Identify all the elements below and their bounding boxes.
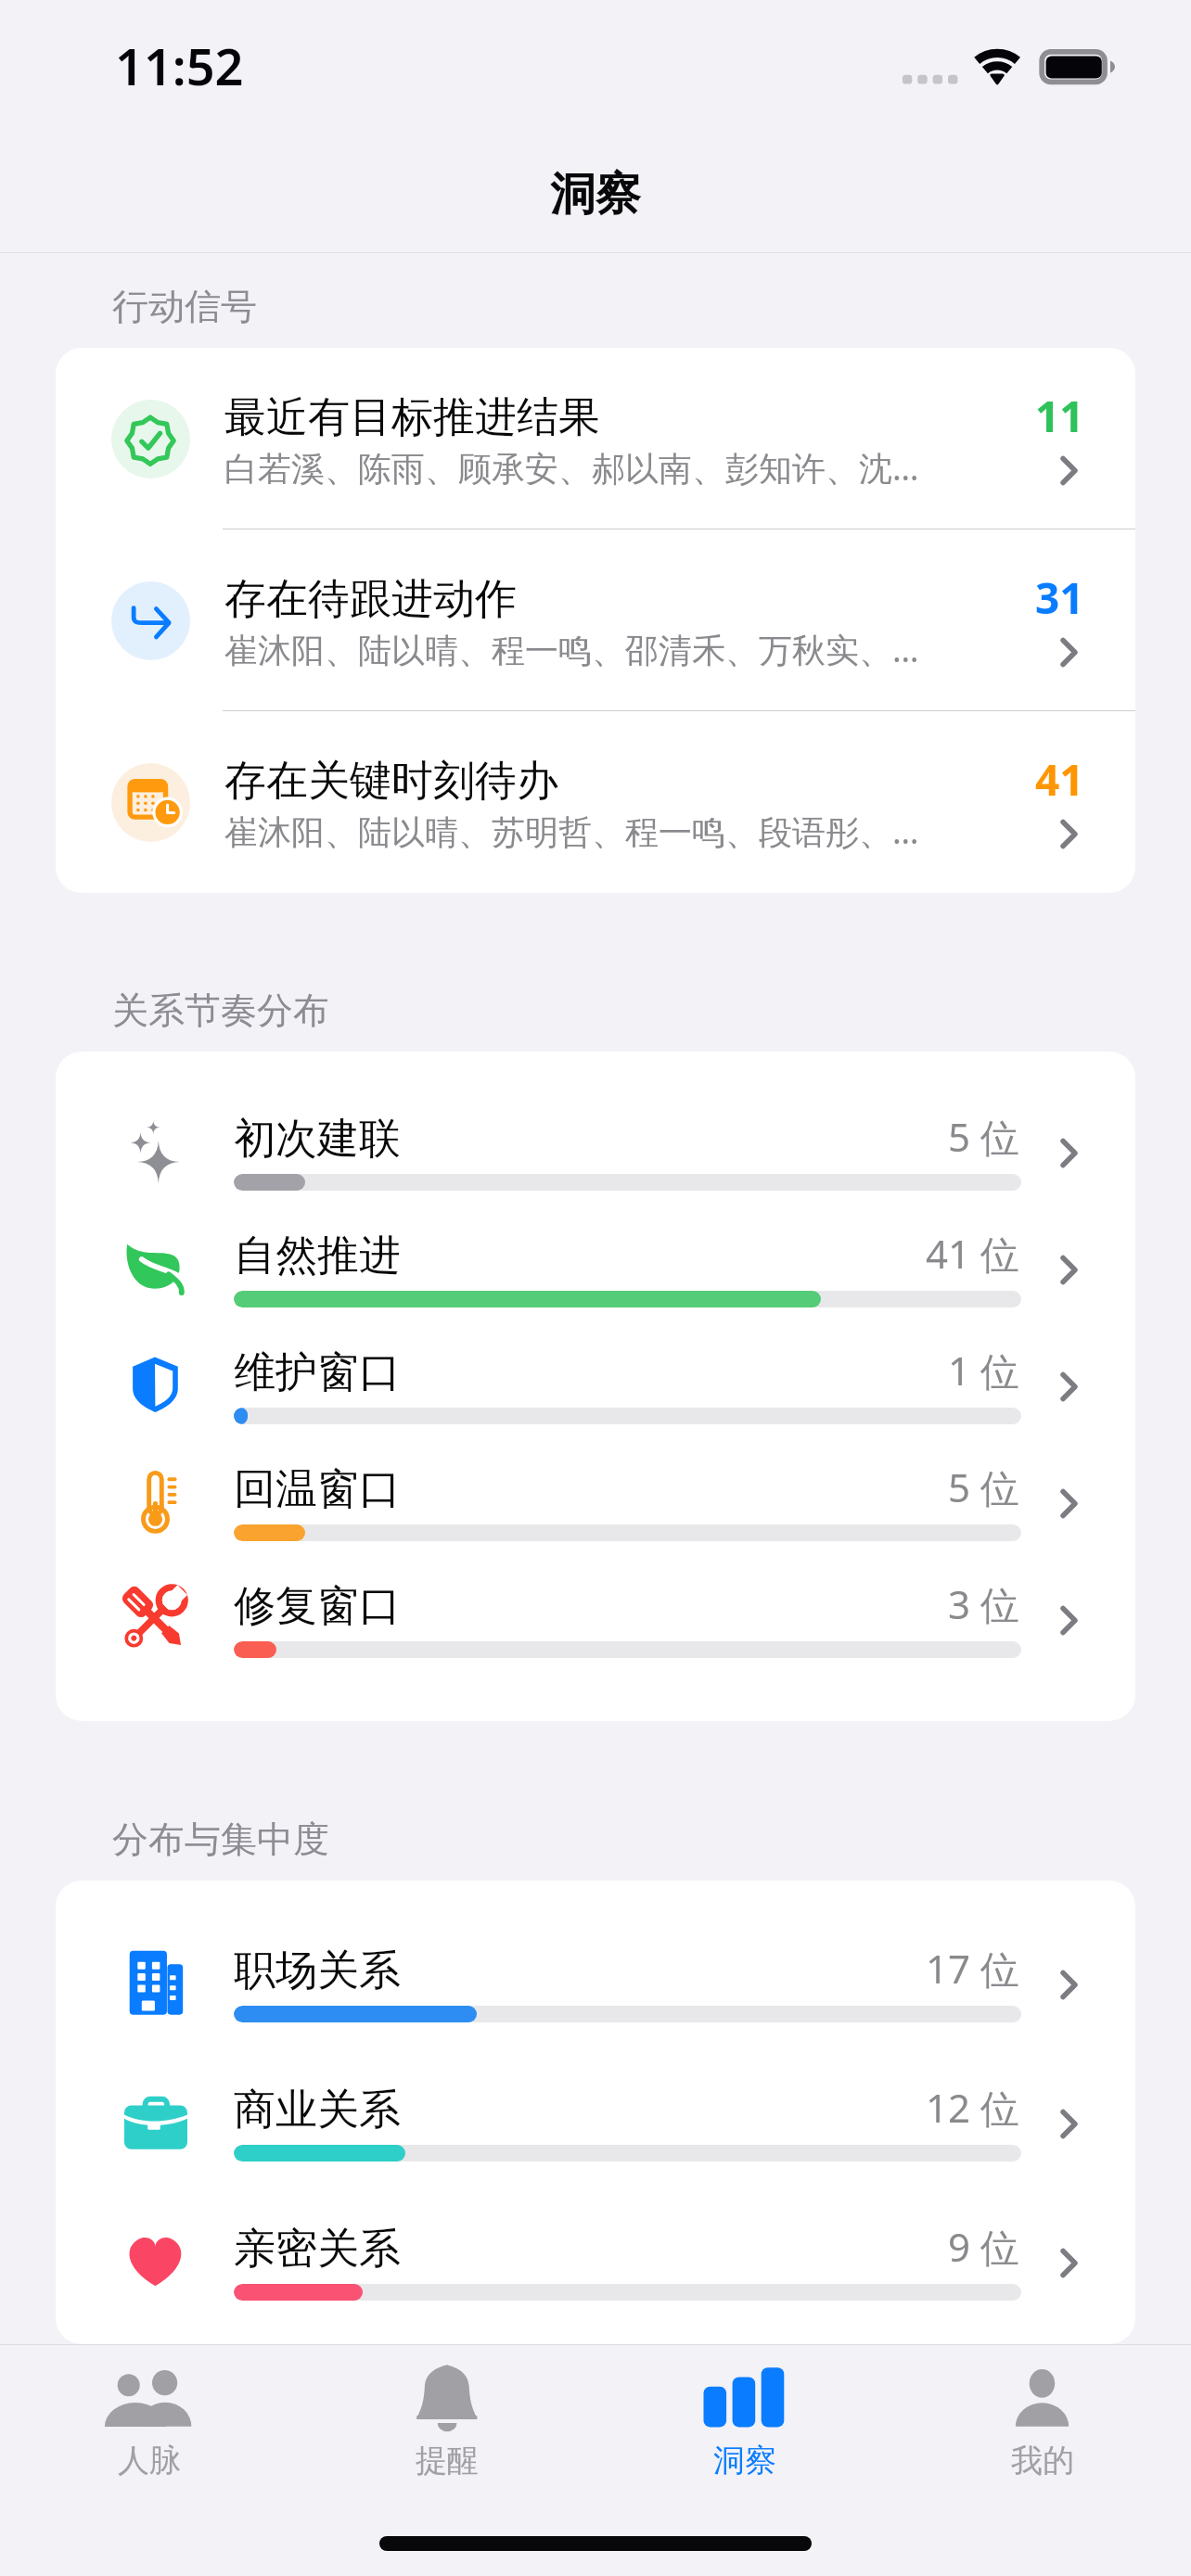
button[interactable]: 存在关键时刻待办 <box>56 711 1135 893</box>
staticText: 行动信号 <box>112 284 257 329</box>
staticText: 洞察 <box>713 2441 776 2480</box>
staticText: 白若溪、陈雨、顾承安、郝以南、彭知许、沈… <box>224 445 929 491</box>
button[interactable]: 初次建联 <box>56 1113 1135 1230</box>
staticText: 12 位 <box>926 2081 1019 2134</box>
button[interactable]: 最近有目标推进结果 <box>56 348 1135 529</box>
staticText: 自然推进 <box>234 1230 401 1282</box>
button[interactable]: 洞察 <box>595 2345 893 2576</box>
staticText: 1 位 <box>948 1344 1019 1396</box>
button[interactable]: 提醒 <box>298 2345 595 2576</box>
button[interactable]: 存在待跟进动作 <box>56 529 1135 710</box>
staticText: 5 位 <box>948 1460 1019 1513</box>
staticText: 提醒 <box>416 2441 479 2480</box>
staticText: 31 <box>1035 568 1084 627</box>
staticText: 维护窗口 <box>234 1346 401 1399</box>
staticText: 41 <box>1035 750 1084 809</box>
staticText: 人脉 <box>118 2441 181 2480</box>
staticText: 41 位 <box>926 1227 1019 1280</box>
button[interactable]: 人脉 <box>0 2345 298 2576</box>
staticText: 存在待跟进动作 <box>224 573 517 626</box>
staticText: 职场关系 <box>234 1945 401 1997</box>
staticText: 回温窗口 <box>234 1463 401 1516</box>
staticText: 11:52 <box>115 32 244 100</box>
staticText: 初次建联 <box>234 1113 401 1166</box>
staticText: 我的 <box>1011 2441 1074 2480</box>
staticText: 11 <box>1035 387 1084 445</box>
staticText: 崔沐阳、陆以晴、苏明哲、程一鸣、段语彤、… <box>224 809 929 854</box>
staticText: 17 位 <box>926 1942 1019 1995</box>
staticText: 亲密关系 <box>234 2223 401 2276</box>
staticText: 商业关系 <box>234 2084 401 2136</box>
staticText: 修复窗口 <box>234 1580 401 1633</box>
staticText: 崔沐阳、陆以晴、程一鸣、邵清禾、万秋实、… <box>224 627 929 672</box>
button[interactable]: 回温窗口 <box>56 1463 1135 1580</box>
staticText: 洞察 <box>550 166 641 223</box>
button[interactable]: 自然推进 <box>56 1230 1135 1346</box>
button[interactable]: 维护窗口 <box>56 1346 1135 1463</box>
staticText: 分布与集中度 <box>112 1817 329 1862</box>
staticText: 5 位 <box>948 1110 1019 1163</box>
button[interactable]: 商业关系 <box>56 2084 1135 2223</box>
button[interactable]: 亲密关系 <box>56 2223 1135 2344</box>
staticText: 3 位 <box>948 1577 1019 1630</box>
staticText: 9 位 <box>948 2220 1019 2273</box>
button[interactable]: 修复窗口 <box>56 1580 1135 1697</box>
staticText: 最近有目标推进结果 <box>224 391 600 444</box>
staticText: 关系节奏分布 <box>112 988 329 1033</box>
button[interactable]: 我的 <box>893 2345 1191 2576</box>
staticText: 存在关键时刻待办 <box>224 755 558 808</box>
button[interactable]: 职场关系 <box>56 1945 1135 2084</box>
